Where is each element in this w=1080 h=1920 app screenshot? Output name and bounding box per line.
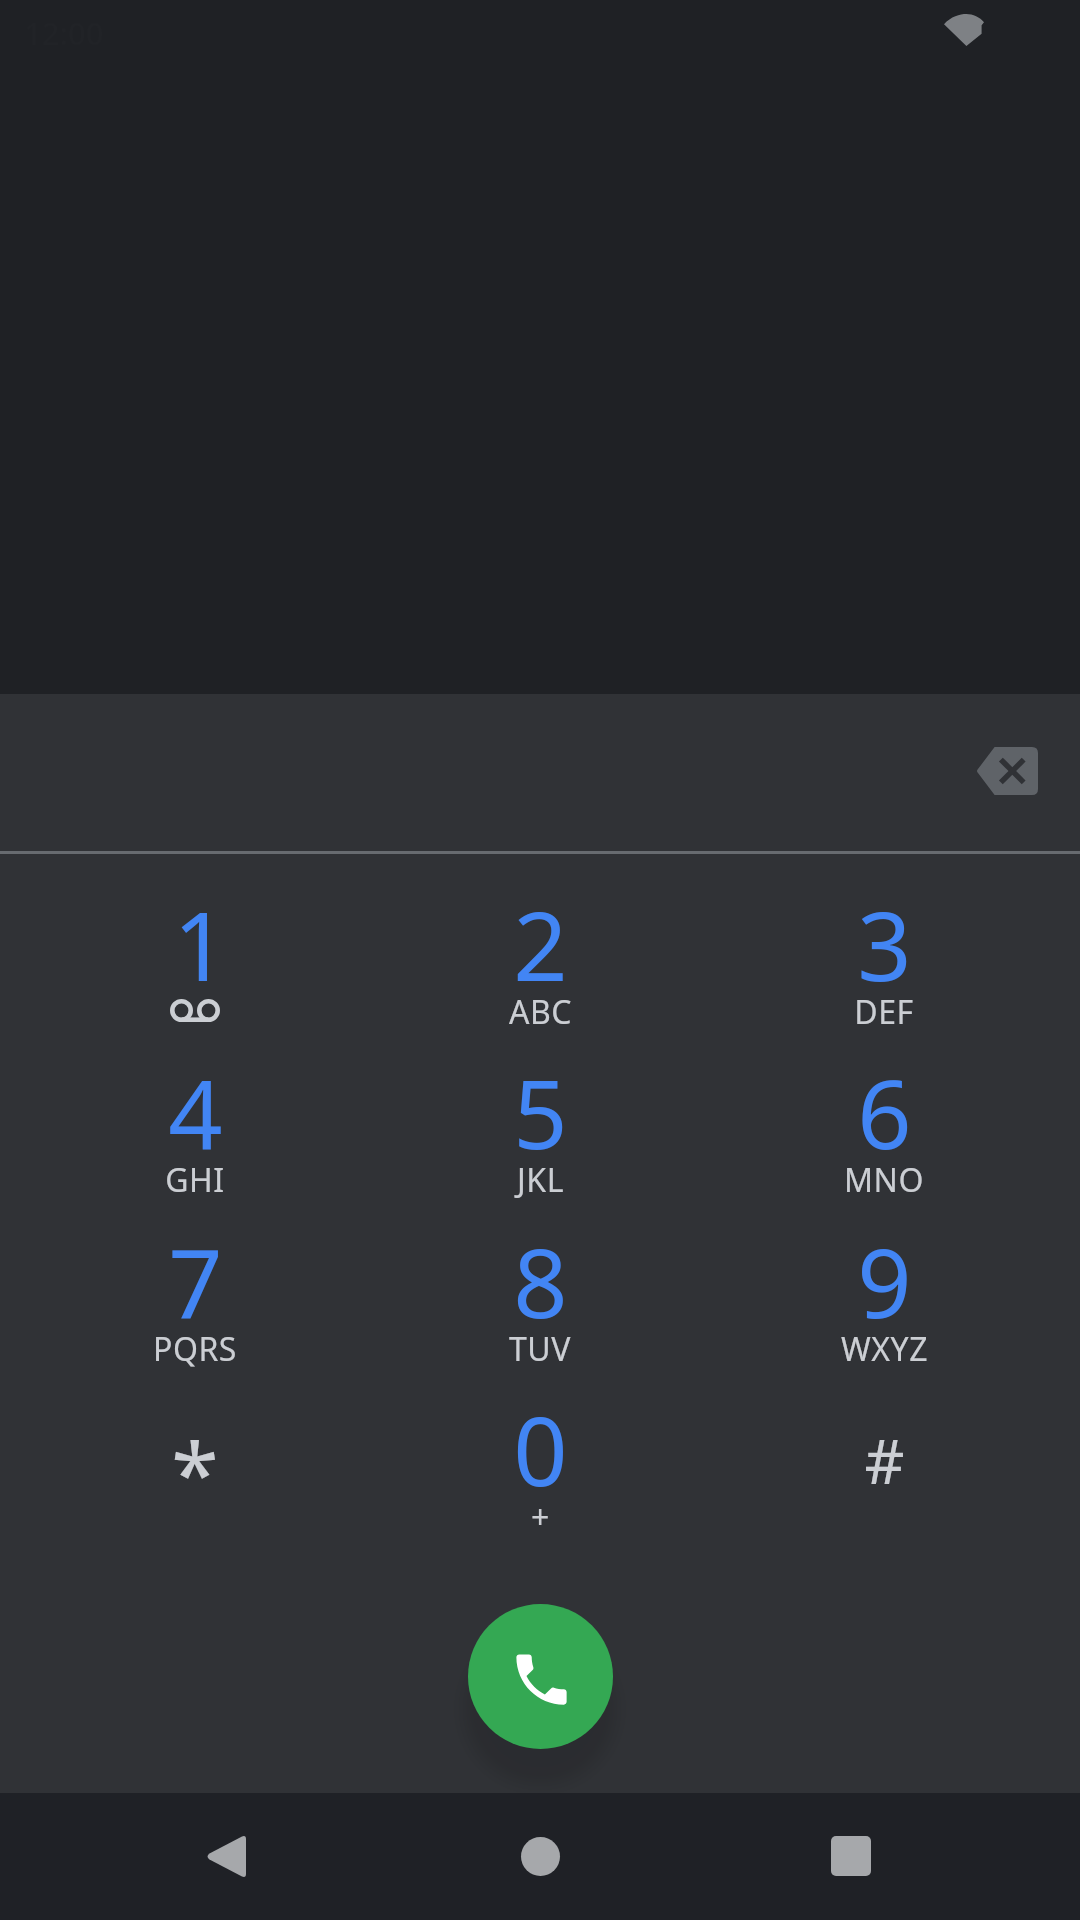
button[interactable]: 6 <box>720 1036 1080 1204</box>
staticText: 8 <box>513 1216 568 1345</box>
staticText: 6 <box>857 1047 912 1176</box>
button[interactable]: 8 <box>360 1205 720 1373</box>
button[interactable]: 0 <box>360 1373 720 1541</box>
staticText: DEF <box>854 990 914 1034</box>
staticText: WXYZ <box>841 1327 928 1371</box>
staticText: 2 <box>513 879 568 1008</box>
button[interactable]: Call <box>468 1604 613 1749</box>
staticText: * <box>171 1413 219 1530</box>
button[interactable]: Delete <box>959 723 1055 819</box>
button[interactable]: 9 <box>720 1205 1080 1373</box>
button[interactable]: 1 <box>0 868 360 1036</box>
staticText: 7 <box>168 1216 223 1345</box>
staticText: MNO <box>844 1158 924 1202</box>
other: Wi-Fi <box>944 14 984 46</box>
staticText: JKL <box>517 1158 564 1202</box>
button[interactable]: Home <box>480 1796 600 1916</box>
staticText: 5 <box>513 1047 568 1176</box>
staticText: 9 <box>857 1216 912 1345</box>
staticText: # <box>864 1418 905 1502</box>
button[interactable]: Recent apps <box>791 1796 911 1916</box>
button[interactable]: 3 <box>720 868 1080 1036</box>
staticText: 3 <box>857 879 912 1008</box>
button[interactable]: 7 <box>0 1205 360 1373</box>
button[interactable]: Back <box>166 1796 286 1916</box>
staticText: 4 <box>168 1047 223 1176</box>
button[interactable]: 5 <box>360 1036 720 1204</box>
staticText: 1 <box>173 879 228 1008</box>
button[interactable]: # <box>720 1373 1080 1541</box>
button[interactable]: 2 <box>360 868 720 1036</box>
staticText: PQRS <box>153 1327 237 1371</box>
staticText: ABC <box>509 990 572 1034</box>
staticText: + <box>531 1495 550 1539</box>
staticText: GHI <box>165 1158 225 1202</box>
staticText: TUV <box>509 1327 571 1371</box>
button[interactable]: 4 <box>0 1036 360 1204</box>
button[interactable]: * <box>0 1373 360 1541</box>
staticText: 0 <box>513 1384 568 1513</box>
